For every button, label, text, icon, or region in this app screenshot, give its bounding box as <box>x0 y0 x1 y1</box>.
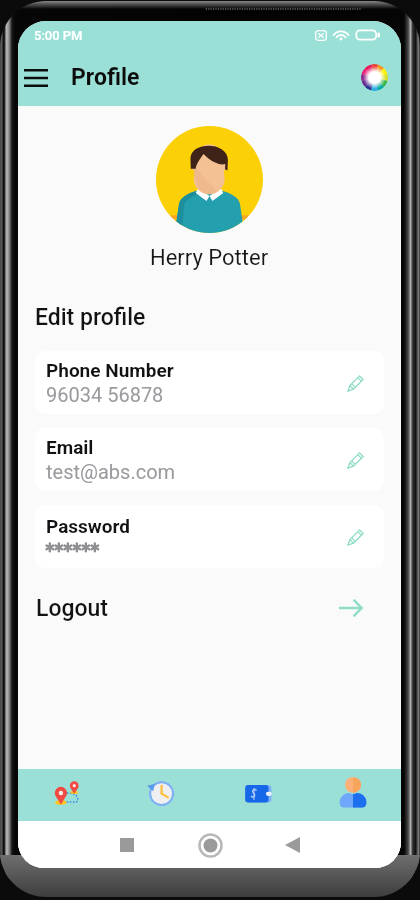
button[interactable]: Profile <box>305 769 401 821</box>
staticText: Email <box>46 436 94 458</box>
staticText: Phone Number <box>46 359 174 381</box>
button[interactable]: Menu <box>19 61 53 95</box>
staticText: test@abs.com <box>46 460 176 483</box>
button[interactable]: Home <box>196 831 224 859</box>
staticText: Edit profile <box>35 304 146 331</box>
button[interactable]: History <box>113 769 209 821</box>
button[interactable]: Wallet <box>209 769 305 821</box>
staticText: Herry Potter <box>150 245 269 271</box>
staticText: 96034 56878 <box>46 383 164 406</box>
button[interactable]: Recents <box>113 831 141 859</box>
button[interactable]: Theme <box>361 64 388 91</box>
button[interactable]: Logout <box>18 591 401 625</box>
button[interactable]: Password <box>35 505 384 568</box>
button[interactable]: Edit Password <box>345 525 368 548</box>
staticText: 5:00 PM <box>34 28 83 43</box>
button[interactable]: Edit Email <box>345 448 368 471</box>
staticText: Password <box>46 515 130 537</box>
button[interactable]: Back <box>278 831 306 859</box>
button[interactable]: Rides <box>18 769 113 821</box>
staticText: Logout <box>36 595 109 622</box>
button[interactable]: Phone Number <box>35 351 384 414</box>
button[interactable]: Email <box>35 428 384 491</box>
staticText: Profile <box>71 64 140 91</box>
button[interactable]: Edit Phone Number <box>345 371 368 394</box>
